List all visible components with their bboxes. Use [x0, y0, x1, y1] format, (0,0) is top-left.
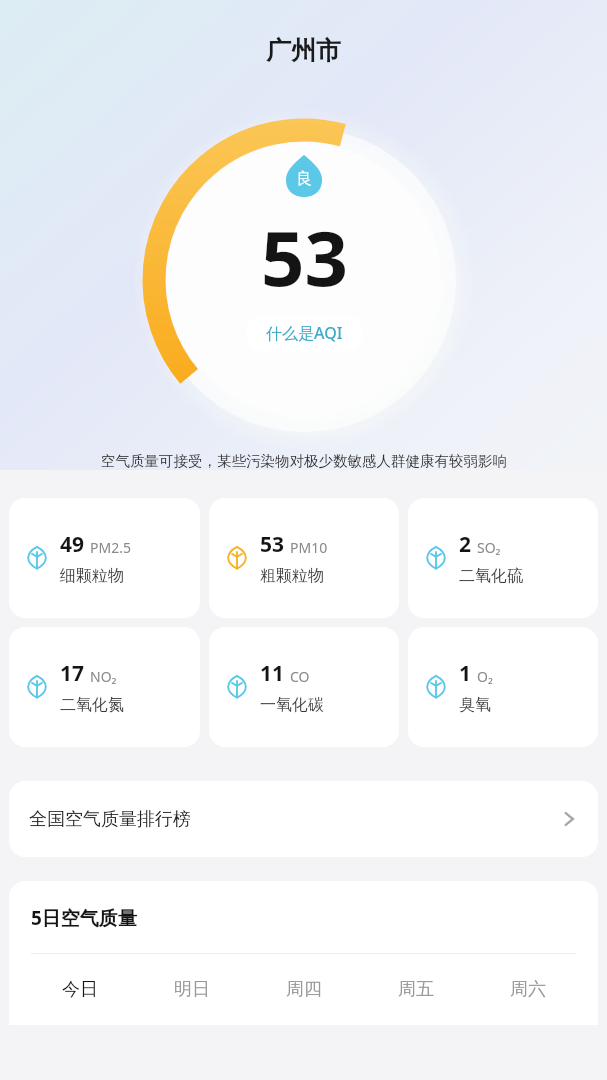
button[interactable]: 53 — [209, 498, 399, 618]
staticText: 臭氧 — [459, 695, 491, 715]
staticText: 二氧化氮 — [60, 695, 124, 715]
staticText: 广州市 — [266, 35, 341, 66]
staticText: 5日空气质量 — [31, 905, 137, 931]
staticText: 空气质量可接受，某些污染物对极少数敏感人群健康有较弱影响 — [101, 452, 507, 470]
staticText: 一氧化碳 — [260, 695, 324, 715]
staticText: 53 — [261, 205, 348, 309]
staticText: 11 — [260, 659, 285, 688]
staticText: O₂ — [477, 667, 493, 686]
staticText: 二氧化硫 — [459, 566, 523, 586]
staticText: CO — [290, 667, 310, 686]
staticText: 明日 — [174, 978, 210, 1001]
button[interactable]: 全国空气质量排行榜 — [9, 781, 598, 857]
button[interactable]: 49 — [9, 498, 200, 618]
staticText: 周六 — [510, 978, 546, 1001]
staticText: 周四 — [286, 978, 322, 1001]
staticText: 1 — [459, 659, 472, 688]
button[interactable]: 周五 — [360, 974, 472, 1005]
button[interactable]: 2 — [408, 498, 598, 618]
staticText: PM2.5 — [90, 538, 131, 557]
staticText: PM10 — [290, 538, 328, 557]
staticText: 良 — [296, 169, 312, 189]
button[interactable]: 17 — [9, 627, 200, 747]
button[interactable]: 今日 — [23, 974, 136, 1005]
staticText: 全国空气质量排行榜 — [29, 808, 191, 831]
staticText: 17 — [60, 659, 85, 688]
staticText: 2 — [459, 530, 472, 559]
staticText: NO₂ — [90, 667, 117, 686]
staticText: 什么是AQI — [266, 322, 343, 344]
staticText: 细颗粒物 — [60, 566, 124, 586]
button[interactable]: 明日 — [136, 974, 248, 1005]
staticText: SO₂ — [477, 538, 501, 557]
staticText: 49 — [60, 530, 85, 559]
button[interactable]: 11 — [209, 627, 399, 747]
button[interactable]: 周六 — [472, 974, 584, 1005]
staticText: 粗颗粒物 — [260, 566, 324, 586]
button[interactable]: 什么是AQI — [246, 315, 363, 351]
staticText: 今日 — [62, 978, 98, 1001]
staticText: 53 — [260, 530, 285, 559]
staticText: 周五 — [398, 978, 434, 1001]
button[interactable]: 周四 — [248, 974, 360, 1005]
button[interactable]: 1 — [408, 627, 598, 747]
